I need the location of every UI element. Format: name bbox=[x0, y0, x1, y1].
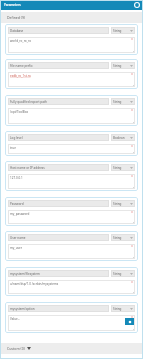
staticText: Defined (9) bbox=[7, 15, 25, 20]
button[interactable]: mysystem/option bbox=[5, 302, 138, 333]
button[interactable]: String bbox=[111, 62, 135, 69]
button[interactable]: String bbox=[111, 27, 135, 34]
button[interactable]: String bbox=[111, 200, 135, 207]
staticText: File name prefix bbox=[10, 64, 33, 68]
staticText: Log level bbox=[10, 136, 23, 140]
button[interactable]: my_user bbox=[8, 244, 135, 259]
button[interactable]: my_password bbox=[8, 210, 135, 224]
button[interactable]: String bbox=[111, 305, 135, 312]
staticText: String bbox=[113, 100, 122, 104]
staticText: String bbox=[113, 202, 122, 206]
button[interactable]: /opt/ToolBox bbox=[8, 108, 135, 124]
button[interactable]: exdb_ro_1st-ra bbox=[8, 72, 135, 87]
button[interactable]: Boolean bbox=[111, 134, 135, 141]
button[interactable]: File name prefix bbox=[5, 59, 138, 89]
staticText: 127.0.0.1 bbox=[10, 176, 23, 180]
staticText: String bbox=[113, 64, 122, 68]
button[interactable]: true bbox=[8, 144, 135, 154]
staticText: world_ro_ro_ro bbox=[10, 39, 32, 43]
button[interactable]: mysystem/filesystem bbox=[5, 267, 138, 296]
staticText: /opt/ToolBox bbox=[10, 110, 29, 114]
button[interactable]: Database bbox=[5, 24, 138, 55]
button[interactable]: Value... bbox=[8, 315, 135, 331]
staticText: String bbox=[113, 29, 122, 33]
staticText: my_password bbox=[10, 212, 30, 216]
button[interactable]: Password bbox=[5, 197, 138, 226]
button[interactable]: 127.0.0.1 bbox=[8, 174, 135, 189]
button[interactable]: String bbox=[111, 164, 135, 171]
staticText: true bbox=[10, 146, 16, 150]
button[interactable]: u/nam/dsp/1.0 /scrbin/mysystems bbox=[8, 280, 135, 294]
staticText: mysystem/filesystem bbox=[10, 272, 40, 276]
staticText: u/nam/dsp/1.0 /scrbin/mysystems bbox=[10, 282, 59, 286]
staticText: User name bbox=[10, 236, 26, 240]
staticText: String bbox=[113, 166, 122, 170]
button[interactable]: Host name or IP address bbox=[5, 161, 138, 191]
button[interactable]: String bbox=[111, 234, 135, 241]
staticText: mysystem/option bbox=[10, 307, 35, 311]
button[interactable]: Help bbox=[134, 2, 140, 8]
staticText: Boolean bbox=[113, 136, 125, 140]
staticText: String bbox=[113, 236, 122, 240]
staticText: Fully qualified export path bbox=[10, 100, 47, 104]
button[interactable]: Add value bbox=[125, 318, 134, 325]
button[interactable]: Custom (0) bbox=[0, 343, 143, 354]
staticText: Host name or IP address bbox=[10, 166, 45, 170]
staticText: Password bbox=[10, 202, 24, 206]
staticText: String bbox=[113, 272, 122, 276]
button[interactable]: String bbox=[111, 98, 135, 105]
button[interactable]: User name bbox=[5, 231, 138, 261]
button[interactable]: Defined (9) bbox=[0, 12, 143, 23]
staticText: Parameters bbox=[4, 3, 21, 7]
staticText: my_user bbox=[10, 246, 22, 250]
staticText: exdb_ro_1st-ra bbox=[10, 74, 31, 78]
staticText: String bbox=[113, 307, 122, 311]
button[interactable]: String bbox=[111, 270, 135, 277]
staticText: Database bbox=[10, 29, 24, 33]
staticText: Value... bbox=[10, 317, 21, 321]
staticText: Custom (0) bbox=[7, 346, 25, 351]
button[interactable]: Fully qualified export path bbox=[5, 95, 138, 126]
button[interactable]: world_ro_ro_ro bbox=[8, 37, 135, 53]
button[interactable]: Log level bbox=[5, 131, 138, 156]
